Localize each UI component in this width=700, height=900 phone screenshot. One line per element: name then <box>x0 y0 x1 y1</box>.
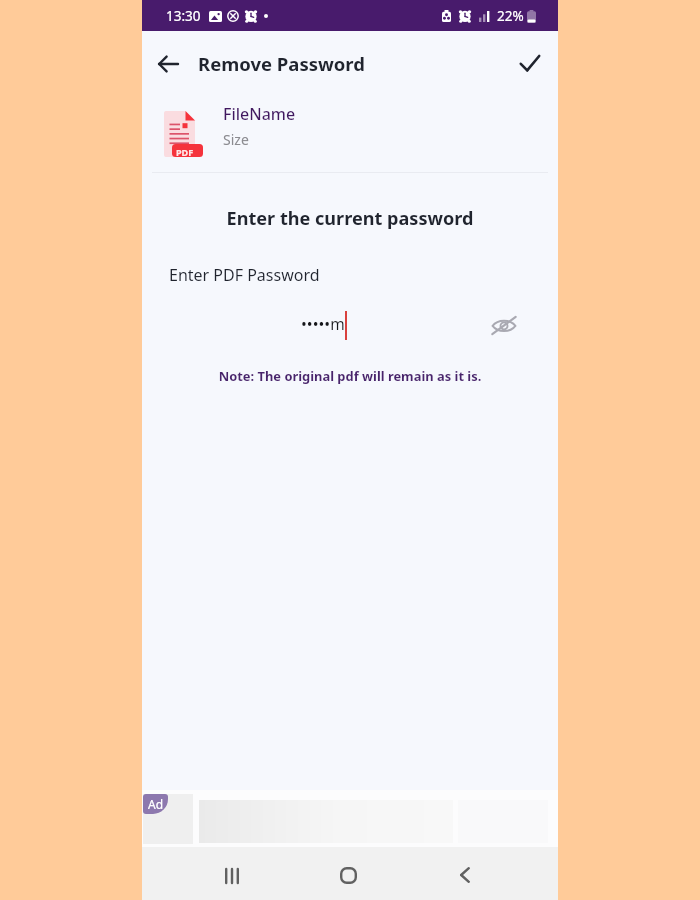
staticText: Enter PDF Password <box>169 264 320 286</box>
staticText: Note: The original pdf will remain as it… <box>142 367 558 385</box>
button[interactable]: Recents <box>210 856 254 896</box>
button[interactable]: Toggle password visibility <box>487 311 521 340</box>
button[interactable]: PDF <box>142 93 558 172</box>
staticText: FileName <box>223 103 296 125</box>
button[interactable]: Back <box>146 42 190 86</box>
button[interactable]: Home <box>326 855 370 895</box>
staticText: Remove Password <box>198 51 365 76</box>
staticText: 22% <box>497 7 524 25</box>
staticText: Ad <box>148 796 164 812</box>
staticText: Size <box>223 130 249 149</box>
staticText: PDF <box>176 146 194 158</box>
staticText: 13:30 <box>166 7 201 25</box>
button[interactable]: Confirm <box>508 41 552 85</box>
staticText: •••••m <box>301 313 345 334</box>
button[interactable]: Back <box>443 855 487 895</box>
staticText: Enter the current password <box>142 206 558 231</box>
